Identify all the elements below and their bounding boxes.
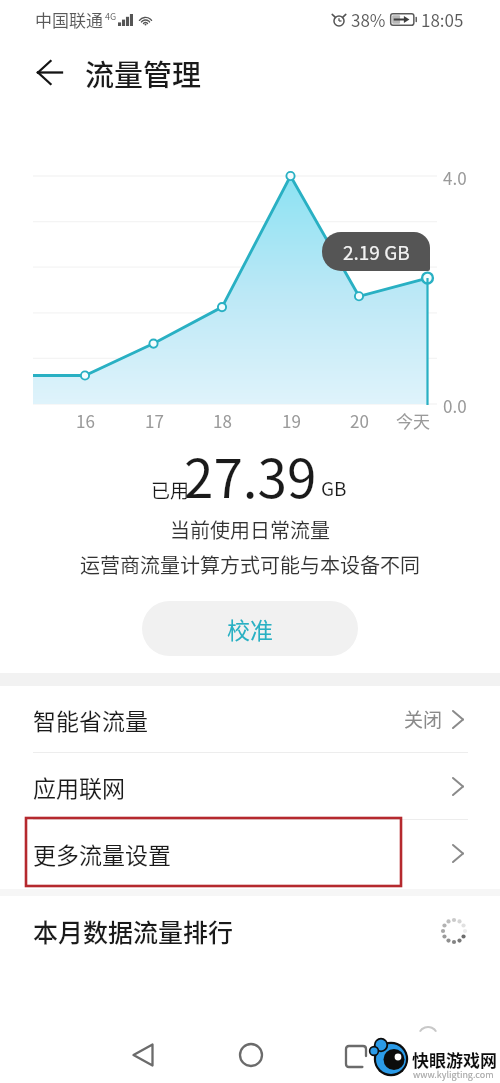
staticText: 已用 bbox=[151, 476, 190, 504]
button[interactable]: 更多流量设置 bbox=[0, 820, 500, 886]
staticText: 38% bbox=[351, 7, 386, 32]
staticText: 27.39 bbox=[184, 437, 317, 514]
staticText: 19 bbox=[282, 408, 301, 433]
button[interactable]: 最近任务 bbox=[331, 1031, 381, 1081]
staticText: 运营商流量计算方式可能与本设备不同 bbox=[80, 550, 420, 579]
staticText: 4.0 bbox=[443, 165, 467, 190]
staticText: 关闭 bbox=[404, 705, 443, 733]
staticText: 16 bbox=[76, 408, 95, 433]
staticText: 流量管理 bbox=[85, 52, 202, 94]
staticText: 0.0 bbox=[443, 393, 467, 418]
staticText: 智能省流量 bbox=[33, 703, 148, 736]
staticText: 17 bbox=[145, 408, 164, 433]
button[interactable]: 返回 bbox=[25, 48, 74, 97]
button[interactable]: 返回 bbox=[118, 1030, 168, 1080]
staticText: 校准 bbox=[227, 612, 273, 645]
staticText: 更多流量设置 bbox=[33, 837, 171, 870]
button[interactable]: 校准 bbox=[142, 601, 358, 656]
button[interactable]: 主页 bbox=[226, 1030, 276, 1080]
staticText: 18:05 bbox=[421, 7, 464, 32]
staticText: 今天 bbox=[396, 408, 430, 433]
staticText: 2.19 GB bbox=[343, 238, 410, 266]
staticText: GB bbox=[321, 474, 347, 502]
staticText: 4G bbox=[105, 10, 117, 23]
staticText: 中国联通 bbox=[35, 7, 103, 32]
staticText: 应用联网 bbox=[33, 770, 125, 803]
staticText: 20 bbox=[350, 408, 369, 433]
staticText: 快眼游戏网 bbox=[412, 1047, 497, 1072]
staticText: 当前使用日常流量 bbox=[170, 515, 330, 544]
button[interactable]: 智能省流量 bbox=[0, 686, 500, 753]
staticText: 18 bbox=[213, 408, 232, 433]
button[interactable]: 应用联网 bbox=[0, 753, 500, 820]
staticText: 本月数据流量排行 bbox=[33, 913, 234, 949]
staticText: www.kyligting.com bbox=[413, 1068, 494, 1081]
